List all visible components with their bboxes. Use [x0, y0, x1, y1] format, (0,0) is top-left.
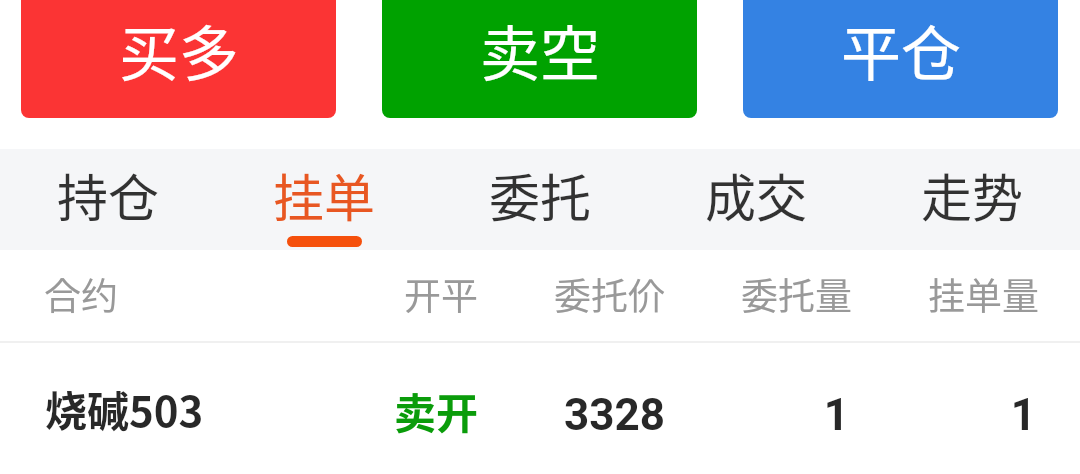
- staticText: 委托: [489, 158, 592, 232]
- button[interactable]: 持仓: [0, 149, 216, 250]
- staticText: 卖空: [480, 6, 600, 93]
- button[interactable]: 委托: [432, 149, 648, 250]
- staticText: 成交: [705, 158, 808, 232]
- staticText: 1: [849, 389, 1036, 441]
- button[interactable]: 走势: [864, 149, 1080, 250]
- button[interactable]: 挂单: [216, 149, 432, 250]
- staticText: 开平: [291, 267, 478, 321]
- staticText: 烧碱503: [45, 378, 291, 439]
- button[interactable]: 成交: [648, 149, 864, 250]
- staticText: 委托价: [478, 267, 665, 321]
- staticText: 3328: [478, 389, 665, 441]
- button[interactable]: 买多: [21, 0, 336, 118]
- staticText: 平仓: [841, 6, 961, 93]
- staticText: 委托量: [665, 267, 852, 321]
- staticText: 1: [662, 389, 849, 441]
- button[interactable]: 平仓: [743, 0, 1058, 118]
- button[interactable]: 烧碱503: [0, 343, 1080, 474]
- staticText: 持仓: [57, 158, 160, 232]
- staticText: 挂单: [273, 158, 376, 232]
- staticText: 挂单量: [852, 267, 1039, 321]
- staticText: 合约: [44, 267, 291, 321]
- staticText: 走势: [921, 158, 1024, 232]
- button[interactable]: 卖空: [382, 0, 697, 118]
- staticText: 买多: [119, 6, 239, 93]
- staticText: 卖开: [291, 380, 478, 441]
